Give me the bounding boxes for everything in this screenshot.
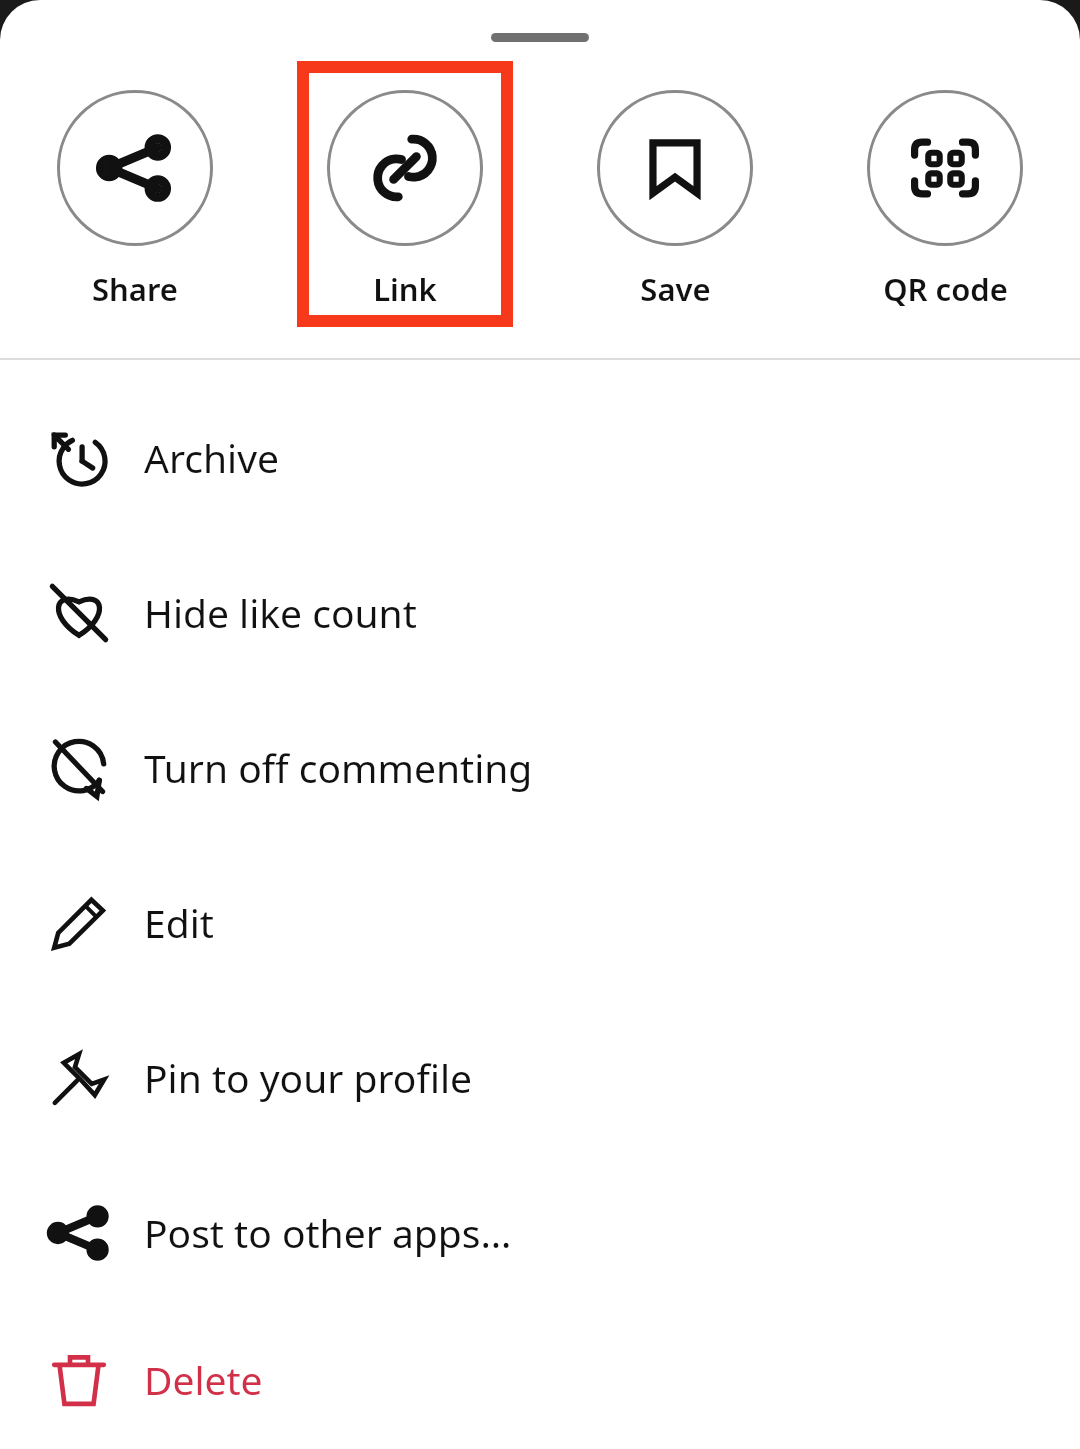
staticText: Post to other apps… <box>144 1206 512 1259</box>
button[interactable]: Post to other apps… <box>0 1155 1080 1310</box>
button[interactable]: Archive <box>0 380 1080 535</box>
staticText: Delete <box>144 1353 263 1406</box>
staticText: Edit <box>144 896 214 949</box>
staticText: Hide like count <box>144 586 417 639</box>
button[interactable]: QR code <box>837 61 1053 327</box>
button[interactable]: Pin to your profile <box>0 1000 1080 1155</box>
button[interactable]: Hide like count <box>0 535 1080 690</box>
staticText: Archive <box>144 431 279 484</box>
button[interactable]: Edit <box>0 845 1080 1000</box>
button[interactable]: Delete <box>0 1310 1080 1449</box>
staticText: Link <box>373 268 437 310</box>
staticText: Turn off commenting <box>144 741 533 794</box>
staticText: Pin to your profile <box>144 1051 472 1104</box>
staticText: Share <box>92 268 178 310</box>
button[interactable]: Turn off commenting <box>0 690 1080 845</box>
button[interactable]: Link <box>309 73 501 315</box>
button[interactable]: Share <box>27 61 243 327</box>
staticText: QR code <box>883 268 1008 310</box>
button[interactable]: Save <box>567 61 783 327</box>
staticText: Save <box>640 268 711 310</box>
